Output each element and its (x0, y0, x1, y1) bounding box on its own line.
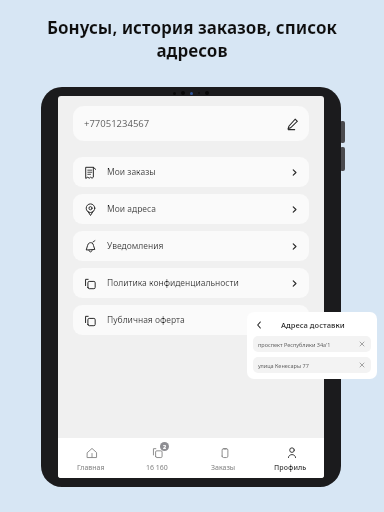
button[interactable]: Мои заказы (73, 157, 309, 187)
button[interactable]: Политика конфиденциальности (73, 268, 309, 298)
staticText: Главная (77, 463, 105, 473)
staticText: проспект Республики 34а'1 (258, 341, 358, 348)
staticText: улица Кенесары 77 (258, 362, 358, 369)
button[interactable]: Назад (253, 319, 264, 330)
staticText: Публичная оферта (107, 314, 290, 326)
staticText: 16 160 (146, 463, 168, 473)
staticText: Профиль (274, 463, 307, 473)
button[interactable]: +77051234567 (73, 106, 309, 141)
button[interactable]: Главная (58, 439, 124, 477)
staticText: Адреса доставки (281, 320, 345, 330)
staticText: Уведомления (107, 240, 290, 252)
button[interactable]: Удалить адрес (358, 361, 366, 369)
staticText: Бонусы, история заказов, список (14, 16, 370, 39)
staticText: Заказы (211, 463, 236, 473)
button[interactable]: проспект Республики 34а'1 (253, 336, 371, 352)
button[interactable]: Профиль (257, 439, 324, 477)
staticText: адресов (14, 39, 370, 62)
button[interactable]: улица Кенесары 77 (253, 357, 371, 373)
button[interactable]: Мои адреса (73, 194, 309, 224)
button[interactable]: Публичная оферта (73, 305, 309, 335)
button[interactable]: Удалить адрес (358, 340, 366, 348)
button[interactable]: Уведомления (73, 231, 309, 261)
staticText: Мои адреса (107, 203, 290, 215)
staticText: Мои заказы (107, 166, 290, 178)
button[interactable]: Заказы (190, 439, 257, 477)
staticText: 2 (163, 443, 167, 450)
staticText: Политика конфиденциальности (107, 277, 290, 289)
staticText: +77051234567 (84, 117, 150, 130)
button[interactable]: 2 (124, 439, 190, 477)
button[interactable]: Редактировать номер (284, 116, 300, 132)
